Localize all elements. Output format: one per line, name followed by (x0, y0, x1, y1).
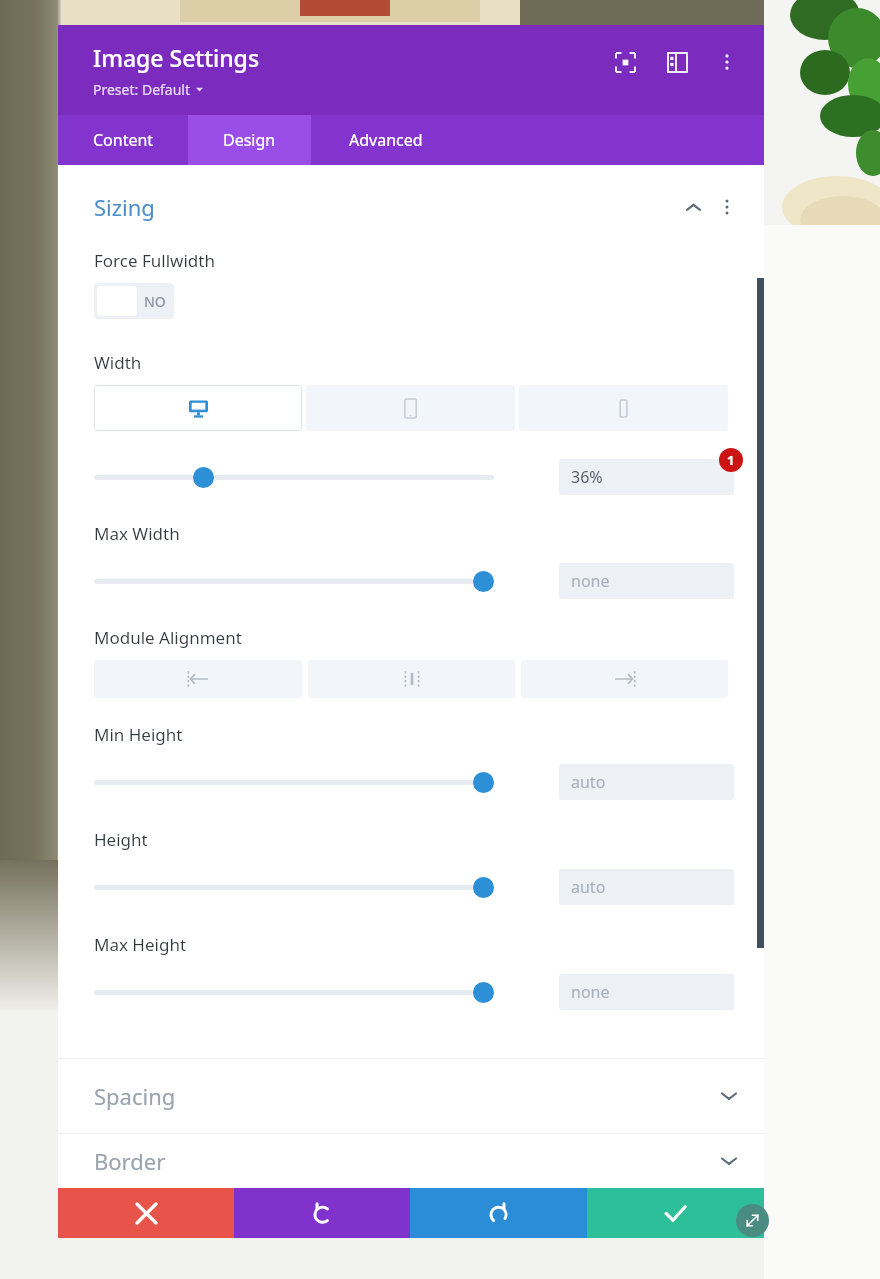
button[interactable]: Sizing (58, 192, 764, 222)
button[interactable]: Slider (94, 767, 494, 797)
staticText: Max Height (94, 933, 187, 956)
staticText: Module Alignment (94, 626, 242, 649)
staticText: auto (571, 771, 606, 793)
button[interactable]: Cancel (58, 1188, 234, 1238)
button[interactable]: Slider (94, 977, 494, 1007)
button[interactable]: none (559, 563, 734, 599)
button[interactable]: Align left (94, 660, 302, 698)
staticText: Height (94, 828, 148, 851)
button[interactable]: Breakpoint (519, 385, 728, 431)
button[interactable]: none (559, 974, 734, 1010)
staticText: Design (223, 129, 276, 151)
staticText: none (571, 570, 610, 592)
button[interactable]: Breakpoint (94, 385, 302, 431)
staticText: Preset: Default (93, 80, 191, 99)
button[interactable]: 36% (559, 459, 734, 495)
staticText: Content (93, 129, 154, 151)
staticText: Spacing (94, 1081, 176, 1111)
staticText: NO (144, 292, 166, 311)
button[interactable]: Force Fullwidth off (94, 283, 174, 319)
button[interactable]: Align center (308, 660, 515, 698)
button[interactable]: Design (188, 115, 311, 165)
staticText: Advanced (349, 129, 423, 151)
button[interactable]: Slider (94, 566, 494, 596)
button[interactable]: Advanced (311, 115, 461, 165)
button[interactable]: Preset: Default (93, 80, 203, 99)
staticText: 36% (571, 466, 603, 488)
button[interactable]: Border (58, 1134, 764, 1188)
staticText: 1 (727, 451, 735, 469)
button[interactable]: auto (559, 764, 734, 800)
button[interactable]: Toggle layout (662, 47, 692, 77)
button[interactable]: Align right (521, 660, 728, 698)
button[interactable]: auto (559, 869, 734, 905)
staticText: Image Settings (93, 42, 260, 73)
staticText: Min Height (94, 723, 183, 746)
staticText: Border (94, 1146, 166, 1176)
button[interactable]: Focus module (610, 47, 640, 77)
button[interactable]: Breakpoint (306, 385, 515, 431)
staticText: none (571, 981, 610, 1003)
button[interactable]: Undo (234, 1188, 410, 1238)
staticText: Sizing (94, 192, 155, 222)
button[interactable]: Resize panel (736, 1204, 769, 1237)
button[interactable]: Content (58, 115, 188, 165)
staticText: Max Width (94, 522, 180, 545)
button[interactable]: Save (587, 1188, 764, 1238)
button[interactable]: Slider (94, 462, 494, 492)
button[interactable]: Redo (410, 1188, 587, 1238)
button[interactable]: More options (712, 47, 742, 77)
staticText: Width (94, 351, 142, 374)
staticText: Force Fullwidth (94, 249, 215, 272)
button[interactable]: Section options (716, 196, 738, 218)
staticText: auto (571, 876, 606, 898)
button[interactable]: Slider (94, 872, 494, 902)
button[interactable]: Spacing (58, 1059, 764, 1133)
